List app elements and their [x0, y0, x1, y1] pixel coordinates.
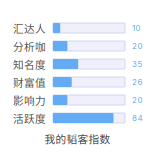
- staticText: 20: [132, 41, 143, 51]
- staticText: 影响力: [13, 92, 46, 108]
- staticText: 知名度: [13, 56, 46, 72]
- button[interactable]: 汇达人: [13, 23, 144, 33]
- staticText: 35: [132, 59, 143, 69]
- staticText: 我的韬客指数: [44, 131, 110, 146]
- button[interactable]: 活跃度: [13, 113, 144, 123]
- button[interactable]: 财富值: [13, 77, 144, 87]
- staticText: 汇达人: [13, 20, 46, 36]
- staticText: 84: [132, 113, 143, 123]
- staticText: 活跃度: [13, 110, 46, 126]
- staticText: 分析咖: [13, 38, 46, 54]
- staticText: 26: [132, 77, 143, 87]
- button[interactable]: 知名度: [13, 59, 144, 69]
- button[interactable]: 分析咖: [13, 41, 144, 51]
- staticText: 10: [132, 23, 141, 33]
- staticText: 财富值: [13, 74, 46, 90]
- staticText: 20: [132, 95, 143, 105]
- button[interactable]: 影响力: [13, 95, 144, 105]
